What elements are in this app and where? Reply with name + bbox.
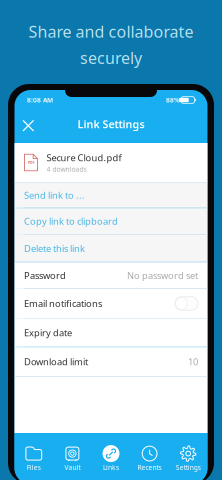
staticText: Password	[24, 269, 66, 282]
button[interactable]: Password	[14, 262, 207, 288]
staticText: Secure Cloud.pdf	[46, 151, 121, 164]
staticText: 88%	[166, 96, 180, 104]
button[interactable]: Copy link to clipboard	[14, 208, 207, 234]
staticText: 4 downloads	[46, 165, 86, 174]
button[interactable]: Close	[17, 115, 39, 137]
staticText: Copy link to clipboard	[24, 215, 118, 227]
staticText: Delete this link	[24, 242, 85, 254]
button[interactable]: Send link to ...	[14, 183, 207, 208]
staticText: 8:08 AM	[27, 96, 53, 104]
staticText: Download limit	[24, 355, 88, 368]
button[interactable]: Recents	[130, 443, 169, 473]
staticText: Send link to ...	[24, 189, 85, 201]
staticText: No password set	[127, 269, 198, 282]
button[interactable]: Delete this link	[14, 235, 207, 262]
staticText: Links	[103, 463, 119, 472]
staticText: securely	[80, 47, 142, 68]
staticText: Link Settings	[77, 117, 144, 131]
button[interactable]: Files	[14, 443, 53, 473]
button[interactable]: Links	[92, 443, 130, 473]
staticText: PDF	[27, 160, 34, 165]
staticText: Expiry date	[24, 326, 72, 339]
staticText: Recents	[138, 463, 162, 472]
button[interactable]: PDF	[14, 143, 207, 182]
staticText: Vault	[64, 463, 80, 472]
staticText: Share and collaborate	[28, 21, 193, 42]
staticText: Email notifications	[24, 297, 102, 310]
button[interactable]: Vault	[53, 443, 92, 473]
staticText: Files	[27, 463, 41, 472]
button[interactable]: Email notifications	[14, 289, 207, 318]
staticText: 10	[188, 355, 198, 368]
button[interactable]: Download limit	[14, 347, 207, 376]
button[interactable]: Expiry date	[14, 319, 207, 347]
staticText: Settings	[176, 463, 201, 472]
button[interactable]: Settings	[169, 443, 207, 473]
